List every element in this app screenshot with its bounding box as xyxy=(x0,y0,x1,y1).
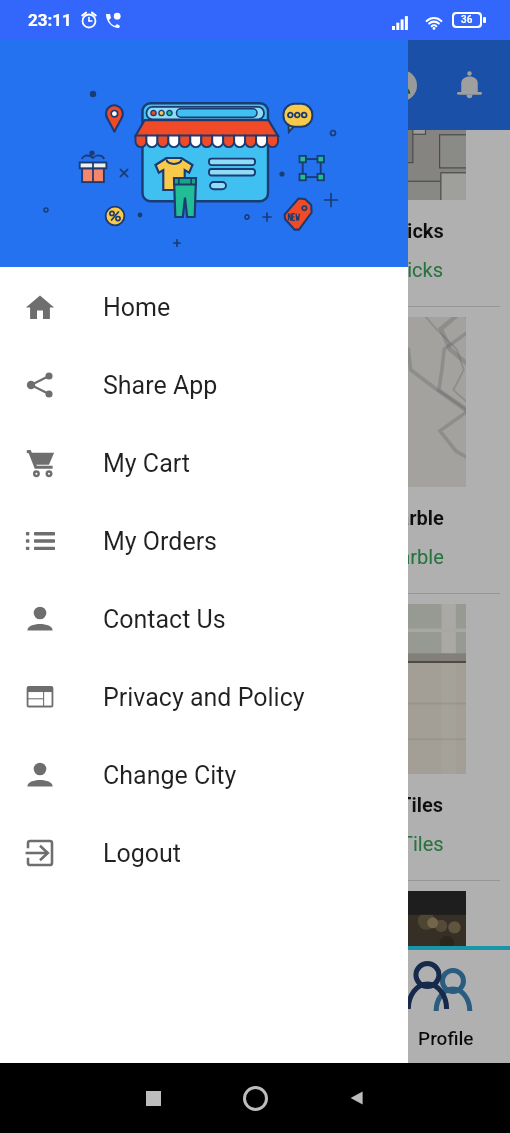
button[interactable]: Home xyxy=(204,1063,306,1133)
button[interactable]: Bricks xyxy=(0,130,510,307)
staticText: Bricks xyxy=(387,219,444,242)
button[interactable]: Recent apps xyxy=(102,1063,204,1133)
button[interactable]: Profile xyxy=(382,946,510,1064)
staticText: 36 xyxy=(461,14,473,26)
button[interactable]: Cart xyxy=(254,946,382,1064)
staticText: Bricks xyxy=(388,258,444,281)
staticText: 23:11 xyxy=(28,10,72,30)
staticText: Contact Us xyxy=(103,605,226,634)
staticText: My Orders xyxy=(103,527,218,556)
button[interactable]: Share App xyxy=(0,346,408,424)
staticText: Tiles xyxy=(401,832,444,855)
staticText: Marble xyxy=(381,506,444,529)
staticText: Privacy and Policy xyxy=(103,683,305,712)
button[interactable]: Logout xyxy=(0,814,408,892)
button[interactable]: Back xyxy=(306,1063,408,1133)
staticText: Home xyxy=(66,72,126,98)
staticText: Share App xyxy=(103,371,218,400)
button[interactable]: Contact Us xyxy=(0,580,408,658)
button[interactable]: My Orders xyxy=(0,502,408,580)
button[interactable]: Category xyxy=(127,946,254,1064)
staticText: Profile xyxy=(418,1027,474,1049)
button[interactable]: Tiles xyxy=(0,594,510,881)
button[interactable]: Home xyxy=(0,946,127,1064)
staticText: Marble xyxy=(382,545,444,568)
button[interactable]: Home xyxy=(0,268,408,346)
staticText: Tiles xyxy=(399,793,444,816)
button[interactable]: My Cart xyxy=(0,424,408,502)
button[interactable]: Account xyxy=(378,62,424,108)
button[interactable]: Marble xyxy=(0,307,510,594)
staticText: Logout xyxy=(103,839,181,868)
staticText: Change City xyxy=(103,761,237,790)
staticText: Home xyxy=(103,293,171,322)
button[interactable]: Change City xyxy=(0,736,408,814)
staticText: My Cart xyxy=(103,449,190,478)
button[interactable]: Stone xyxy=(0,881,510,946)
button[interactable]: Notifications xyxy=(446,62,492,108)
button[interactable]: Privacy and Policy xyxy=(0,658,408,736)
